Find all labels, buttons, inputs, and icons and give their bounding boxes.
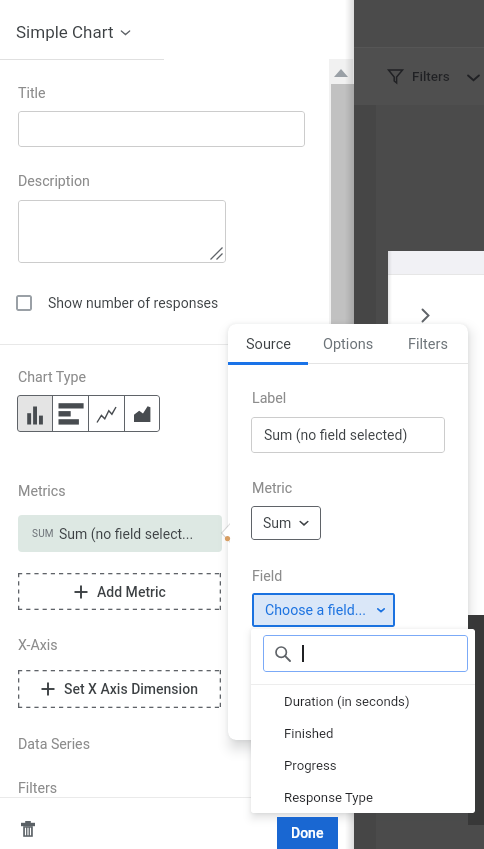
staticText: SUM xyxy=(32,528,54,540)
staticText: Data Series xyxy=(18,736,90,753)
staticText: Sum xyxy=(263,515,292,531)
staticText: X-Axis xyxy=(18,637,58,654)
button[interactable] xyxy=(18,111,305,147)
button[interactable]: Duration (in seconds) xyxy=(251,685,475,717)
button[interactable]: Area chart xyxy=(125,395,160,432)
button[interactable]: Finished xyxy=(251,717,475,749)
staticText: Description xyxy=(18,173,90,190)
staticText: Duration (in seconds) xyxy=(284,694,410,709)
staticText: Metric xyxy=(252,480,293,497)
button[interactable]: SUM xyxy=(18,515,222,552)
staticText: Show number of responses xyxy=(48,295,219,311)
button[interactable]: Sum (no field selected) xyxy=(251,417,445,453)
button[interactable]: Line chart xyxy=(89,395,124,432)
staticText: Title xyxy=(18,85,46,102)
button[interactable] xyxy=(18,200,226,263)
button[interactable]: Bar chart xyxy=(53,395,88,432)
staticText: Add Metric xyxy=(97,584,166,600)
button[interactable]: Sum xyxy=(251,506,321,540)
staticText: Done xyxy=(291,825,324,841)
button[interactable]: Choose a field... xyxy=(252,593,395,627)
staticText: Response Type xyxy=(284,790,373,805)
staticText: Sum (no field select... xyxy=(59,526,194,542)
staticText: Source xyxy=(246,336,291,353)
button[interactable]: Response Type xyxy=(251,781,475,813)
button[interactable]: Progress xyxy=(251,749,475,781)
staticText: Field xyxy=(252,568,283,585)
button[interactable]: Filters xyxy=(388,324,468,365)
staticText: Filters xyxy=(18,780,58,797)
staticText: Choose a field... xyxy=(265,602,366,619)
button[interactable]: Add Metric xyxy=(18,573,221,610)
staticText: Options xyxy=(323,336,374,353)
button[interactable]: Set X Axis Dimension xyxy=(18,670,221,708)
staticText: Sum (no field selected) xyxy=(264,427,408,443)
button[interactable]: Column chart xyxy=(17,395,52,432)
button[interactable]: Options xyxy=(308,324,388,365)
button[interactable]: Filters xyxy=(387,61,450,91)
staticText: Finished xyxy=(284,726,334,741)
button[interactable]: Show number of responses xyxy=(16,292,219,314)
button[interactable]: Source xyxy=(228,324,308,365)
staticText: Simple Chart xyxy=(16,22,114,42)
button[interactable]: Simple Chart xyxy=(16,18,132,46)
staticText: Set X Axis Dimension xyxy=(64,681,198,697)
button[interactable]: Delete xyxy=(13,814,43,844)
staticText: Label xyxy=(252,390,287,407)
staticText: Filters xyxy=(412,68,450,84)
staticText: Chart Type xyxy=(18,369,86,386)
staticText: Metrics xyxy=(18,483,66,500)
staticText: Filters xyxy=(408,336,448,353)
button[interactable]: Done xyxy=(277,817,338,849)
staticText: Progress xyxy=(284,758,337,773)
button[interactable] xyxy=(263,635,468,672)
